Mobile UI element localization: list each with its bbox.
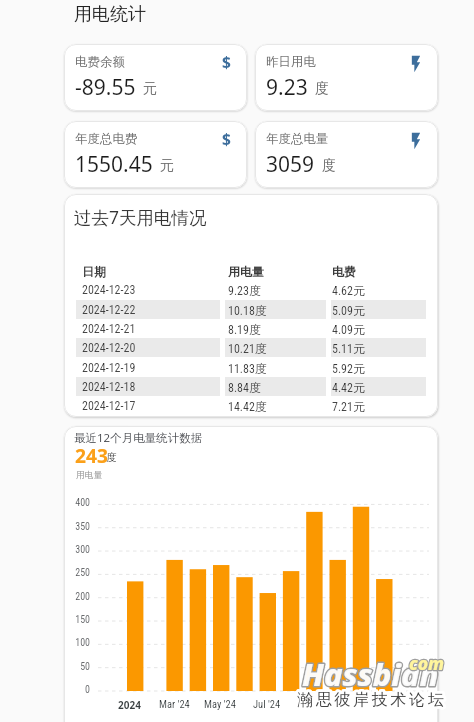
staticText: 2024-12-20 [82,341,136,355]
staticText: 200 [58,591,90,603]
staticText: 2024-12-17 [82,399,136,413]
staticText: 度 [315,80,329,98]
button[interactable]: 电费余额 [64,44,247,111]
staticText: 250 [58,567,90,579]
staticText: 用电量 [228,264,264,279]
staticText: 年度总电费 [75,131,138,147]
staticText: 最近12个月电量统计数据 [74,430,203,446]
staticText: 电费余额 [75,54,125,70]
staticText: Hassbian [302,653,439,695]
staticText: 0 [58,684,90,696]
staticText: 350 [58,521,90,533]
button[interactable]: 2024-12-19 [76,358,425,377]
staticText: $ [222,51,231,72]
staticText: 2024-12-18 [82,380,136,394]
staticText: 7.21元 [332,399,365,414]
staticText: 用电量 [76,470,103,481]
staticText: 5.11元 [332,341,365,356]
staticText: 8.84度 [228,380,261,395]
staticText: Jul '24 [253,698,281,710]
staticText: 元 [143,80,157,98]
staticText: 昨日用电 [266,54,316,70]
staticText: 4.42元 [332,380,365,395]
staticText: 电费 [332,264,356,279]
staticText: 年度总电量 [266,131,329,147]
button[interactable]: 年度总电费 [64,121,247,188]
staticText: 瀚思彼岸技术论坛 [297,690,447,710]
staticText: 过去7天用电情况 [74,205,207,229]
staticText: 300 [58,544,90,556]
staticText: 5.92元 [332,361,365,376]
staticText: 9.23 [266,73,308,102]
staticText: 2024-12-19 [82,361,136,375]
staticText: 瀚思彼岸技术论坛 [297,690,447,710]
staticText: Mar '24 [159,698,190,710]
staticText: 4.62元 [332,283,365,298]
button[interactable]: 2024-12-17 [76,396,425,415]
staticText: 元 [160,157,174,175]
staticText: 10.21度 [228,341,267,356]
staticText: Hassbian [302,653,439,695]
button[interactable]: 2024-12-22 [76,300,425,319]
staticText: May '24 [204,698,236,710]
button[interactable]: 2024-12-23 [76,280,425,299]
staticText: 14.42度 [228,399,267,414]
staticText: com [409,651,445,675]
staticText: 度 [106,451,117,464]
staticText: 2024 [118,698,141,712]
staticText: 2024-12-23 [82,283,136,297]
staticText: 100 [58,637,90,649]
staticText: 2024-12-21 [82,322,136,336]
staticText: 2024-12-22 [82,303,136,317]
staticText: 日期 [82,264,106,279]
staticText: 3059 [266,150,315,179]
staticText: $ [222,128,231,149]
staticText: 度 [322,157,336,175]
staticText: 4.09元 [332,322,365,337]
staticText: com [409,651,445,675]
button[interactable]: 2024-12-18 [76,377,425,396]
button[interactable]: 2024-12-21 [76,319,425,338]
staticText: 用电统计 [74,3,146,26]
staticText: 11.83度 [228,361,267,376]
button[interactable]: 昨日用电 [255,44,438,111]
staticText: 5.09元 [332,303,365,318]
button[interactable]: 最近12个月电量统计数据 [64,426,438,722]
staticText: 10.18度 [228,303,267,318]
staticText: 9.23度 [228,283,261,298]
staticText: 50 [58,661,90,673]
button[interactable]: 日期 [76,261,425,280]
staticText: 150 [58,614,90,626]
staticText: 243 [75,442,108,468]
staticText: 1550.45 [75,150,153,179]
staticText: -89.55 [75,73,136,102]
button[interactable]: 2024-12-20 [76,338,425,357]
staticText: 400 [58,497,90,509]
button[interactable]: 年度总电量 [255,121,438,188]
staticText: 8.19度 [228,322,261,337]
